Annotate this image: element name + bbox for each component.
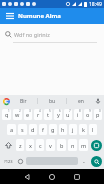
button[interactable] [95, 98, 101, 104]
button[interactable]: i [74, 109, 82, 120]
staticText: s [21, 126, 24, 133]
button[interactable] [1, 137, 15, 153]
staticText: f [42, 126, 44, 133]
staticText: v [49, 142, 52, 149]
staticText: Wdf no giriniz [14, 31, 50, 38]
button[interactable]: o [84, 109, 92, 120]
staticText: 5 [49, 109, 51, 113]
button[interactable]: g [49, 124, 57, 135]
button[interactable]: z [16, 139, 24, 151]
staticText: x [29, 142, 32, 149]
staticText: u [66, 111, 70, 118]
button[interactable]: h [59, 124, 67, 135]
button[interactable]: s [18, 124, 27, 135]
staticText: 7 [69, 109, 71, 113]
button[interactable]: q [2, 109, 11, 120]
staticText: 2 [19, 109, 21, 113]
staticText: i [77, 111, 79, 118]
staticText: 8 [79, 109, 81, 113]
button[interactable]: Wdf no giriniz [5, 31, 104, 38]
staticText: . [83, 156, 85, 166]
button[interactable] [3, 98, 10, 105]
staticText: o [86, 111, 90, 118]
staticText: bu [49, 98, 56, 105]
button[interactable]: n [68, 139, 77, 151]
staticText: j [72, 126, 74, 133]
staticText: a [10, 126, 14, 133]
button[interactable]: k [79, 124, 87, 135]
button[interactable] [21, 171, 33, 183]
button[interactable]: j [69, 124, 77, 135]
staticText: d [31, 126, 35, 133]
button[interactable]: d [29, 124, 37, 135]
staticText: 4 [39, 109, 41, 113]
staticText: z [19, 142, 22, 149]
button[interactable] [46, 171, 58, 183]
button[interactable]: Bir [10, 95, 37, 107]
staticText: t [47, 111, 49, 118]
staticText: 18:49 [89, 1, 102, 8]
button[interactable]: f [39, 124, 47, 135]
button[interactable]: y [54, 109, 62, 120]
staticText: b [60, 142, 64, 149]
staticText: q [5, 111, 9, 118]
staticText: h [61, 126, 65, 133]
staticText: n [71, 142, 75, 149]
button[interactable]: c [36, 139, 44, 151]
staticText: k [82, 126, 85, 133]
button[interactable]: r [34, 109, 42, 120]
staticText: r [37, 111, 40, 118]
staticText: ?123 [4, 159, 13, 164]
button[interactable]: u [64, 109, 72, 120]
staticText: e [26, 111, 30, 118]
staticText: Bir [20, 98, 27, 105]
button[interactable] [71, 171, 83, 183]
button[interactable]: bu [38, 95, 66, 107]
staticText: 0 [99, 109, 101, 113]
button[interactable]: v [46, 139, 55, 151]
staticText: c [39, 142, 42, 149]
staticText: l [92, 126, 94, 133]
button[interactable] [89, 137, 103, 153]
staticText: en [78, 98, 84, 105]
staticText: 3 [29, 109, 31, 113]
button[interactable]: . [79, 153, 89, 169]
staticText: y [57, 111, 60, 118]
button[interactable]: p [94, 109, 102, 120]
button[interactable]: en [67, 95, 95, 107]
button[interactable] [89, 153, 103, 169]
button[interactable]: e [24, 109, 32, 120]
button[interactable]: w [13, 109, 22, 120]
staticText: 1 [8, 109, 10, 113]
staticText: 9 [89, 109, 91, 113]
button[interactable]: m [79, 139, 88, 151]
button[interactable]: b [57, 139, 66, 151]
staticText: Numune Alma [18, 12, 61, 20]
button[interactable]: ?123 [1, 153, 15, 169]
staticText: m [81, 142, 87, 149]
staticText: w [15, 111, 20, 118]
button[interactable]: t [44, 109, 52, 120]
staticText: 6 [59, 109, 61, 113]
button[interactable]: a [7, 124, 16, 135]
staticText: g [51, 126, 55, 133]
staticText: p [96, 111, 100, 118]
button[interactable] [15, 153, 25, 169]
button[interactable]: l [89, 124, 97, 135]
button[interactable]: x [26, 139, 34, 151]
button[interactable] [4, 10, 16, 22]
